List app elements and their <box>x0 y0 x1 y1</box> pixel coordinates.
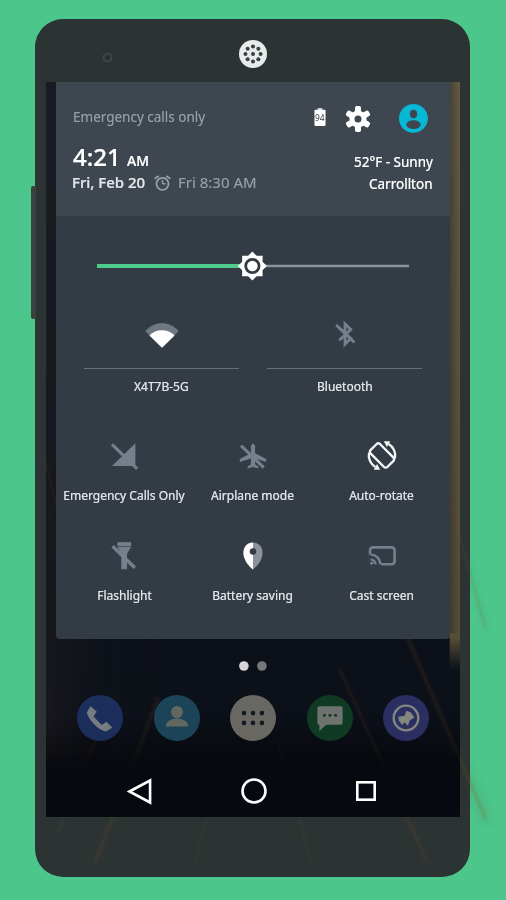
button[interactable]: Airplane mode <box>188 441 317 503</box>
button[interactable]: Messages <box>307 695 353 741</box>
button[interactable]: Emergency Calls Only <box>60 441 188 503</box>
button[interactable]: Battery 94 percent <box>314 108 326 126</box>
staticText: Emergency Calls Only <box>63 487 185 503</box>
button[interactable]: Auto-rotate <box>317 441 446 503</box>
button[interactable]: Flashlight <box>60 541 188 603</box>
staticText: 94 <box>315 112 325 124</box>
button[interactable]: All apps <box>230 695 276 741</box>
button[interactable]: Home <box>230 765 278 817</box>
staticText: Emergency calls only <box>73 108 206 126</box>
staticText: Bluetooth <box>317 378 373 394</box>
staticText: Carrollton <box>369 175 433 193</box>
staticText: Airplane mode <box>211 487 294 503</box>
staticText: Auto-rotate <box>349 487 414 503</box>
staticText: Fri 8:30 AM <box>178 172 257 192</box>
staticText: AM <box>127 151 150 170</box>
staticText: Cast screen <box>349 587 414 603</box>
button[interactable]: Browser <box>383 695 429 741</box>
staticText: 4:21 <box>73 140 121 173</box>
button[interactable]: Cast screen <box>317 541 446 603</box>
button[interactable]: Settings <box>343 104 373 134</box>
button[interactable]: Battery saving <box>188 541 317 603</box>
button[interactable]: Recent apps <box>342 765 390 817</box>
staticText: X4T7B-5G <box>134 378 189 394</box>
button[interactable]: Contacts <box>154 695 200 741</box>
button[interactable]: Phone <box>77 695 123 741</box>
button[interactable]: X4T7B-5G <box>70 320 253 394</box>
staticText: 52°F - Sunny <box>354 153 433 171</box>
button[interactable]: User profile <box>398 103 428 133</box>
staticText: Battery saving <box>212 587 293 603</box>
staticText: Flashlight <box>97 587 152 603</box>
button[interactable]: Back <box>116 765 164 817</box>
button[interactable]: Bluetooth <box>253 320 436 394</box>
staticText: Fri, Feb 20 <box>72 172 146 192</box>
